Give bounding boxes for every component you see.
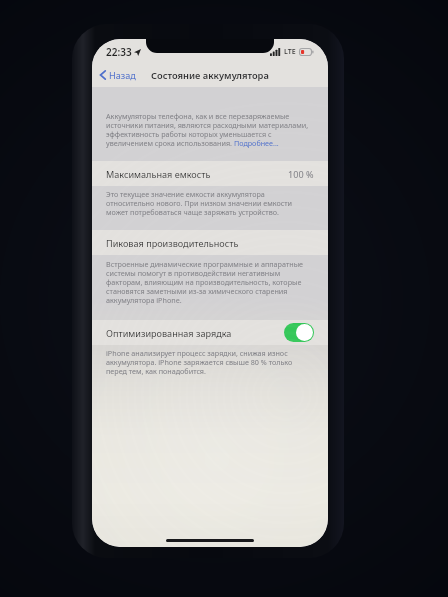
staticText: LTE [284,47,296,57]
staticText: 22:33 [106,45,132,59]
staticText: Аккумуляторы телефона, как и все перезар… [106,111,310,148]
button[interactable]: Назад [92,65,142,85]
button[interactable]: Оптимизированная зарядка [284,323,314,342]
staticText: 100 % [288,168,314,180]
staticText: Пиковая производительность [106,237,239,249]
staticText: Назад [109,69,136,81]
staticText: Встроенные динамические программные и ап… [106,259,310,305]
button[interactable]: Пиковая производительность [92,230,328,255]
staticText: iPhone анализирует процесс зарядки, сниж… [106,348,310,376]
staticText: Это текущее значение емкости аккумулятор… [106,189,310,217]
staticText: Состояние аккумулятора [151,69,269,82]
button[interactable]: Максимальная емкость [92,161,328,186]
staticText: Оптимизированная зарядка [106,327,232,339]
button[interactable]: Оптимизированная зарядка [92,320,328,345]
staticText: Максимальная емкость [106,168,211,180]
